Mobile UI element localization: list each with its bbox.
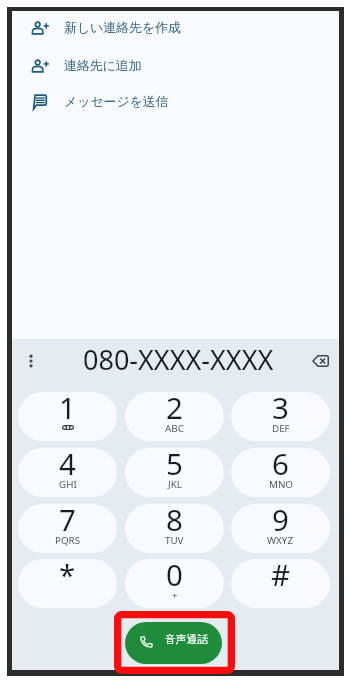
button[interactable]: 4: [18, 448, 117, 497]
staticText: WXYZ: [267, 534, 294, 547]
staticText: #: [271, 559, 291, 594]
staticText: 4: [59, 448, 76, 483]
staticText: 3: [272, 392, 289, 427]
staticText: MNO: [269, 478, 293, 491]
staticText: 5: [166, 448, 183, 483]
staticText: 新しい連絡先を作成: [64, 20, 181, 36]
staticText: 0: [166, 559, 183, 594]
button[interactable]: 1: [18, 392, 117, 441]
staticText: 7: [59, 504, 76, 539]
staticText: 9: [272, 504, 289, 539]
button[interactable]: 2: [125, 392, 224, 441]
button[interactable]: 新しい連絡先を作成: [12, 9, 339, 46]
button[interactable]: 8: [125, 504, 224, 553]
staticText: 連絡先に追加: [64, 58, 142, 74]
staticText: 6: [272, 448, 289, 483]
button[interactable]: 3: [231, 392, 330, 441]
staticText: メッセージを送信: [64, 94, 169, 110]
button[interactable]: More options: [18, 348, 44, 374]
button[interactable]: 9: [231, 504, 330, 553]
button[interactable]: 5: [125, 448, 224, 497]
staticText: JKL: [168, 478, 182, 491]
staticText: 8: [166, 504, 183, 539]
staticText: 2: [166, 392, 183, 427]
staticText: 1: [59, 392, 76, 427]
button[interactable]: *: [18, 559, 117, 608]
staticText: 080-XXXX-XXXX: [83, 341, 274, 374]
staticText: *: [59, 559, 76, 594]
staticText: DEF: [272, 422, 290, 435]
button[interactable]: #: [231, 559, 330, 608]
button[interactable]: メッセージを送信: [12, 83, 339, 120]
staticText: ABC: [165, 422, 184, 435]
button[interactable]: 音声通話: [125, 622, 222, 664]
staticText: 音声通話: [165, 633, 209, 647]
staticText: TUV: [165, 534, 184, 547]
button[interactable]: Backspace: [306, 347, 334, 375]
button[interactable]: 0: [125, 559, 224, 608]
button[interactable]: 7: [18, 504, 117, 553]
staticText: PQRS: [55, 534, 81, 547]
staticText: GHI: [59, 478, 77, 491]
button[interactable]: 連絡先に追加: [12, 47, 339, 84]
staticText: +: [172, 589, 178, 602]
button[interactable]: 6: [231, 448, 330, 497]
